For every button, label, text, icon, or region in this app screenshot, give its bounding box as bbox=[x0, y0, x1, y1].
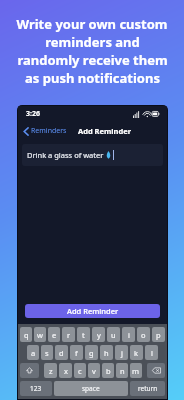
staticText: q bbox=[24, 330, 29, 340]
other: Shift bbox=[26, 367, 33, 374]
button[interactable]: Back bbox=[21, 124, 69, 138]
staticText: as push notifications bbox=[25, 69, 160, 87]
staticText: s bbox=[45, 348, 49, 358]
staticText: k bbox=[134, 348, 139, 358]
staticText: f bbox=[75, 348, 78, 358]
staticText: v bbox=[92, 366, 96, 376]
staticText: 3:26 bbox=[26, 109, 40, 119]
staticText: w bbox=[37, 330, 43, 340]
other: Back bbox=[23, 127, 29, 136]
button[interactable]: f bbox=[70, 345, 83, 360]
staticText: d bbox=[59, 348, 64, 358]
staticText: m bbox=[132, 366, 140, 376]
button[interactable]: t bbox=[77, 327, 90, 342]
staticText: i bbox=[128, 330, 130, 340]
staticText: u bbox=[111, 330, 116, 340]
staticText: Drink a glass of water bbox=[27, 150, 104, 160]
button[interactable]: e bbox=[48, 327, 60, 342]
button[interactable]: z bbox=[44, 363, 57, 378]
button[interactable]: c bbox=[74, 363, 86, 378]
staticText: x bbox=[64, 366, 68, 376]
staticText: return bbox=[138, 384, 158, 393]
other: Backspace bbox=[152, 367, 161, 374]
button[interactable]: h bbox=[100, 345, 113, 360]
staticText: n bbox=[120, 366, 125, 376]
button[interactable]: m bbox=[130, 363, 142, 378]
button[interactable]: Drink a glass of water bbox=[22, 144, 163, 166]
staticText: p bbox=[156, 330, 161, 340]
button[interactable]: n bbox=[116, 363, 128, 378]
staticText: o bbox=[141, 330, 146, 340]
staticText: Add Reminder bbox=[78, 126, 132, 136]
staticText: r bbox=[67, 330, 71, 340]
staticText: j bbox=[121, 348, 123, 358]
staticText: c bbox=[78, 366, 82, 376]
staticText: b bbox=[106, 366, 111, 376]
button[interactable]: space bbox=[54, 381, 128, 396]
button[interactable]: x bbox=[59, 363, 72, 378]
button[interactable]: u bbox=[107, 327, 120, 342]
staticText: a bbox=[31, 348, 36, 358]
button[interactable]: i bbox=[122, 327, 135, 342]
button[interactable]: o bbox=[137, 327, 150, 342]
staticText: z bbox=[49, 366, 53, 376]
staticText: t bbox=[82, 330, 85, 340]
button[interactable]: s bbox=[41, 345, 53, 360]
staticText: e bbox=[52, 330, 57, 340]
button[interactable]: b bbox=[102, 363, 114, 378]
button[interactable]: g bbox=[85, 345, 98, 360]
button[interactable]: p bbox=[152, 327, 165, 342]
button[interactable]: return bbox=[130, 381, 165, 396]
staticText: y bbox=[97, 330, 101, 340]
staticText: Reminders bbox=[31, 126, 67, 136]
button[interactable]: k bbox=[130, 345, 143, 360]
button[interactable]: q bbox=[20, 327, 32, 342]
staticText: Write your own custom bbox=[16, 15, 168, 33]
staticText: Add Reminder bbox=[67, 306, 119, 316]
button[interactable]: Backspace bbox=[147, 363, 165, 378]
button[interactable]: v bbox=[88, 363, 100, 378]
staticText: g bbox=[89, 348, 94, 358]
staticText: reminders and bbox=[45, 33, 140, 51]
button[interactable]: y bbox=[92, 327, 105, 342]
staticText: space bbox=[82, 384, 100, 393]
staticText: l bbox=[151, 348, 153, 358]
button[interactable]: w bbox=[34, 327, 46, 342]
staticText: randomly receive them bbox=[17, 51, 168, 69]
button[interactable]: 123 bbox=[20, 381, 52, 396]
button[interactable]: j bbox=[115, 345, 128, 360]
button[interactable]: r bbox=[62, 327, 75, 342]
button[interactable]: l bbox=[145, 345, 158, 360]
button[interactable]: a bbox=[27, 345, 39, 360]
button[interactable]: Add Reminder bbox=[25, 304, 160, 318]
staticText: h bbox=[104, 348, 109, 358]
button[interactable]: d bbox=[55, 345, 68, 360]
button[interactable]: Shift bbox=[20, 363, 39, 378]
staticText: 123 bbox=[30, 384, 42, 393]
